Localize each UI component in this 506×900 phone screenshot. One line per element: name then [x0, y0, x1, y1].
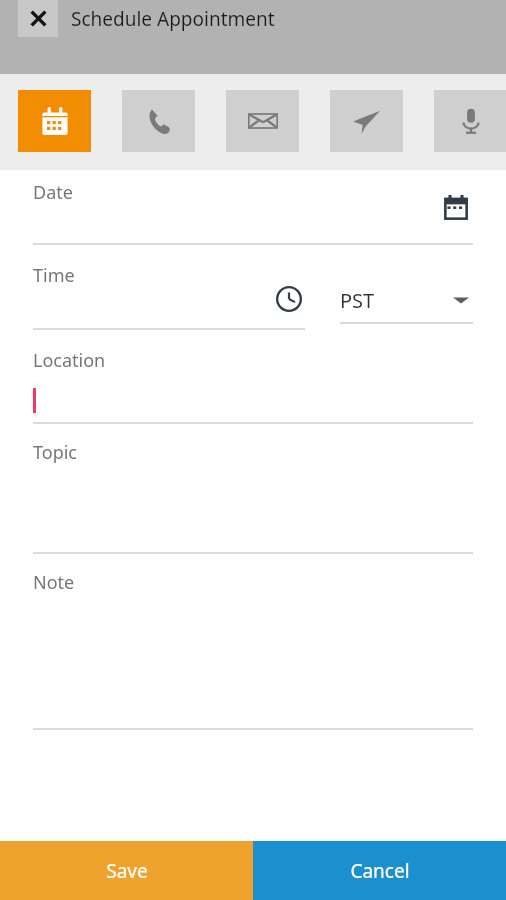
button[interactable]: Calendar	[18, 90, 91, 152]
staticText: Date	[33, 180, 73, 205]
button[interactable]: Send	[330, 90, 403, 152]
button[interactable]: Call	[122, 90, 195, 152]
button[interactable]: Email	[226, 90, 299, 152]
button[interactable]: Save	[0, 841, 253, 900]
staticText: Schedule Appointment	[71, 6, 275, 32]
staticText: Location	[33, 348, 106, 373]
button[interactable]: Voice	[434, 90, 506, 152]
button[interactable]: PST	[340, 280, 475, 320]
button[interactable]: Close	[18, 0, 58, 37]
button[interactable]: Cancel	[253, 841, 506, 900]
button[interactable]: Pick date	[441, 193, 471, 223]
staticText: Note	[33, 570, 75, 595]
staticText: PST	[340, 287, 375, 314]
button[interactable]: Pick time	[274, 284, 304, 314]
staticText: Save	[106, 858, 148, 884]
staticText: Cancel	[350, 858, 410, 884]
staticText: Time	[33, 263, 75, 288]
staticText: Topic	[33, 440, 77, 465]
